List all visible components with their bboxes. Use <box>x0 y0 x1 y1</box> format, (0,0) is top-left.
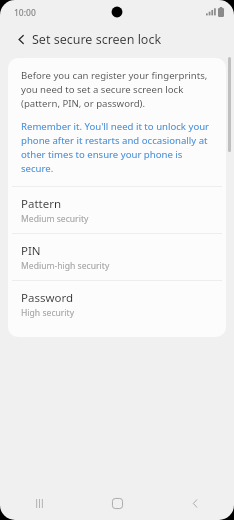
staticText: Set secure screen lock <box>32 31 162 47</box>
staticText: Pattern <box>21 196 62 211</box>
button[interactable]: PIN <box>8 234 226 280</box>
button[interactable]: Recents <box>0 486 78 520</box>
staticText: Medium security <box>21 213 89 224</box>
staticText: Before you can register your fingerprint… <box>21 68 213 110</box>
button[interactable]: Pattern <box>8 187 226 233</box>
button[interactable]: Password <box>8 281 226 327</box>
staticText: Medium-high security <box>21 260 110 271</box>
staticText: 10:00 <box>14 7 36 18</box>
staticText: Password <box>21 290 74 305</box>
staticText: PIN <box>21 243 41 258</box>
button[interactable]: Back <box>156 486 234 520</box>
staticText: Remember it. You'll need it to unlock yo… <box>21 119 213 175</box>
button[interactable]: Home <box>78 486 156 520</box>
button[interactable]: Back <box>8 26 34 52</box>
staticText: High security <box>21 307 75 318</box>
